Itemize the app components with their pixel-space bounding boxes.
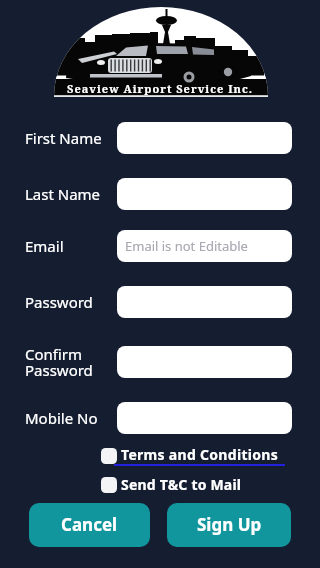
button[interactable] bbox=[117, 122, 292, 154]
button[interactable] bbox=[117, 178, 292, 210]
staticText: Cancel bbox=[61, 513, 118, 536]
button[interactable] bbox=[117, 402, 292, 434]
staticText: Send T&C to Mail bbox=[121, 475, 242, 494]
staticText: Seaview Airport Service Inc. bbox=[0, 81, 320, 96]
staticText: Mobile No bbox=[25, 408, 98, 428]
button[interactable]: Email is not Editable bbox=[117, 230, 292, 262]
button[interactable] bbox=[117, 346, 292, 378]
button[interactable]: Send T&C to Mail bbox=[92, 473, 302, 496]
button[interactable] bbox=[117, 286, 292, 318]
staticText: First Name bbox=[25, 128, 102, 148]
button[interactable]: Sign Up bbox=[167, 503, 291, 547]
staticText: Email bbox=[25, 236, 64, 256]
staticText: Last Name bbox=[25, 184, 101, 204]
button[interactable]: Cancel bbox=[29, 503, 150, 547]
staticText: Sign Up bbox=[197, 513, 262, 536]
staticText: Terms and Conditions bbox=[121, 445, 279, 464]
staticText: Email is not Editable bbox=[125, 237, 248, 255]
staticText: Confirm Password bbox=[25, 344, 93, 376]
staticText: Password bbox=[25, 292, 93, 312]
button[interactable]: Terms and Conditions bbox=[92, 443, 320, 468]
